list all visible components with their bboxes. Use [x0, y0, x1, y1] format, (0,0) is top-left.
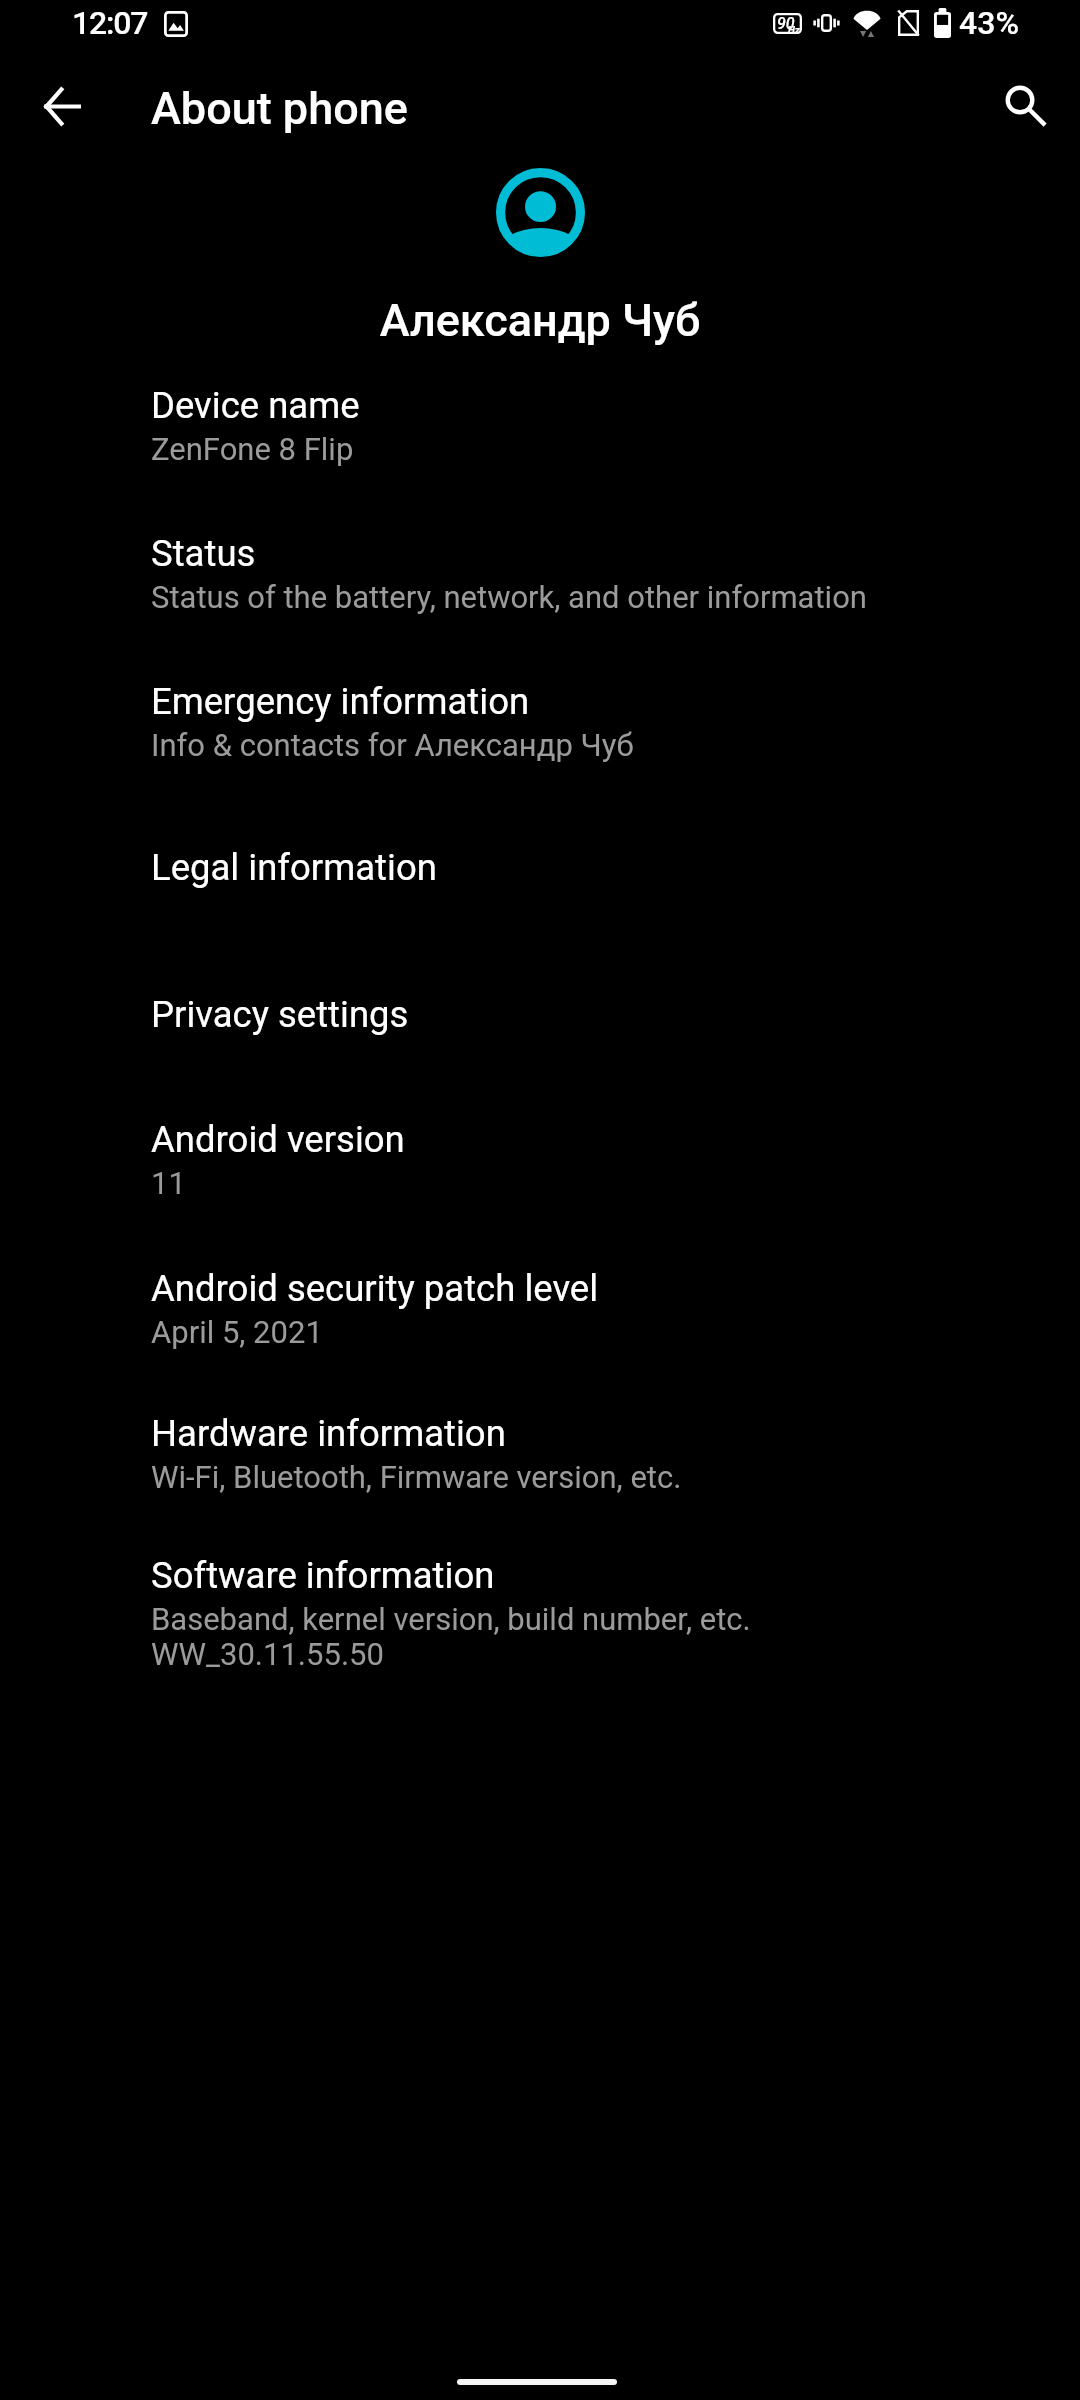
- staticText: Android security patch level: [151, 1267, 599, 1310]
- button[interactable]: Android security patch level: [0, 1240, 1080, 1385]
- staticText: 11: [151, 1165, 186, 1201]
- button[interactable]: Privacy settings: [0, 944, 1080, 1091]
- button[interactable]: Emergency information: [0, 649, 1080, 797]
- staticText: 12:07: [72, 4, 148, 42]
- button[interactable]: Legal information: [0, 797, 1080, 944]
- button[interactable]: Status: [0, 501, 1080, 649]
- staticText: 43%: [959, 4, 1019, 42]
- staticText: WW_30.11.55.50: [151, 1636, 384, 1672]
- staticText: Software information: [151, 1554, 495, 1597]
- staticText: Hz: [788, 25, 800, 37]
- staticText: Device name: [151, 384, 360, 427]
- staticText: Hardware information: [151, 1412, 506, 1455]
- staticText: Status: [151, 532, 256, 575]
- staticText: Privacy settings: [151, 993, 409, 1036]
- button[interactable]: Hardware information: [0, 1385, 1080, 1527]
- staticText: Info & contacts for Александр Чуб: [151, 727, 634, 763]
- staticText: Александр Чуб: [0, 294, 1080, 347]
- staticText: ZenFone 8 Flip: [151, 431, 354, 467]
- staticText: Wi-Fi, Bluetooth, Firmware version, etc.: [151, 1459, 682, 1495]
- button[interactable]: Android version: [0, 1091, 1080, 1240]
- button[interactable]: Search: [981, 61, 1062, 142]
- staticText: Legal information: [151, 846, 437, 889]
- button[interactable]: Software information: [0, 1527, 1080, 1707]
- staticText: Status of the battery, network, and othe…: [151, 579, 867, 615]
- staticText: Emergency information: [151, 680, 530, 723]
- button[interactable]: Back: [22, 66, 103, 147]
- button[interactable]: Device name: [0, 355, 1080, 501]
- staticText: Baseband, kernel version, build number, …: [151, 1601, 751, 1637]
- staticText: 90: [777, 14, 795, 33]
- staticText: April 5, 2021: [151, 1314, 323, 1350]
- staticText: About phone: [151, 82, 408, 135]
- staticText: Android version: [151, 1118, 405, 1161]
